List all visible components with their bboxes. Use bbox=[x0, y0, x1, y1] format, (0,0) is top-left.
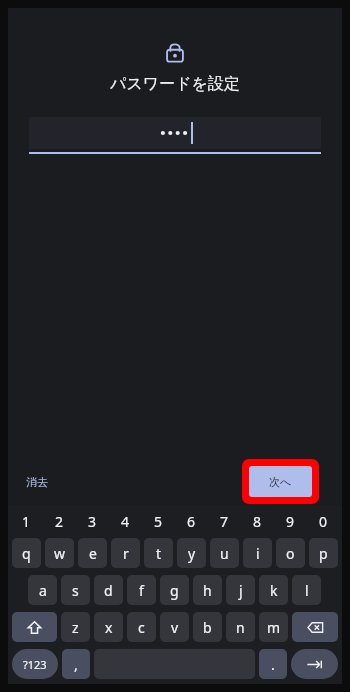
staticText: u bbox=[220, 544, 229, 563]
button[interactable]: k bbox=[259, 575, 288, 605]
staticText: 4 bbox=[121, 512, 130, 531]
staticText: q bbox=[22, 544, 31, 563]
button[interactable]: d bbox=[94, 575, 123, 605]
staticText: o bbox=[286, 544, 295, 563]
staticText: ?123 bbox=[23, 657, 47, 672]
button[interactable]: p bbox=[309, 538, 338, 568]
button[interactable]: 2 bbox=[43, 508, 76, 534]
staticText: 次へ bbox=[269, 475, 292, 489]
button[interactable]: n bbox=[226, 612, 255, 642]
staticText: c bbox=[138, 618, 145, 637]
staticText: v bbox=[171, 618, 179, 637]
staticText: 7 bbox=[220, 512, 229, 531]
button[interactable]: s bbox=[61, 575, 90, 605]
button[interactable]: a bbox=[28, 575, 57, 605]
staticText: f bbox=[139, 581, 144, 600]
staticText: z bbox=[72, 618, 79, 637]
button[interactable]: e bbox=[78, 538, 107, 568]
button[interactable]: 4 bbox=[109, 508, 142, 534]
staticText: y bbox=[188, 544, 196, 563]
button[interactable]: 3 bbox=[76, 508, 109, 534]
button[interactable]: 0 bbox=[307, 508, 340, 534]
button[interactable]: t bbox=[144, 538, 173, 568]
other: Lock bbox=[164, 41, 186, 63]
staticText: p bbox=[319, 544, 328, 563]
staticText: j bbox=[239, 581, 243, 600]
button[interactable]: o bbox=[276, 538, 305, 568]
button[interactable]: Backspace bbox=[292, 612, 338, 642]
button[interactable]: j bbox=[226, 575, 255, 605]
staticText: s bbox=[72, 581, 79, 600]
button[interactable]: c bbox=[127, 612, 156, 642]
button[interactable]: i bbox=[243, 538, 272, 568]
button[interactable]: 8 bbox=[241, 508, 274, 534]
staticText: 3 bbox=[88, 512, 97, 531]
button[interactable]: q bbox=[12, 538, 41, 568]
staticText: l bbox=[305, 581, 309, 600]
button[interactable]: v bbox=[160, 612, 189, 642]
button[interactable]: Enter bbox=[291, 649, 338, 679]
button[interactable]: 5 bbox=[142, 508, 175, 534]
button[interactable]: z bbox=[61, 612, 90, 642]
button[interactable]: y bbox=[177, 538, 206, 568]
button[interactable]: f bbox=[127, 575, 156, 605]
button[interactable]: 消去 bbox=[22, 471, 52, 493]
button[interactable]: x bbox=[94, 612, 123, 642]
button[interactable]: r bbox=[111, 538, 140, 568]
staticText: b bbox=[203, 618, 212, 637]
button[interactable]: g bbox=[160, 575, 189, 605]
button[interactable]: 次へ bbox=[249, 466, 312, 497]
staticText: x bbox=[105, 618, 113, 637]
staticText: 2 bbox=[55, 512, 64, 531]
button[interactable]: 7 bbox=[208, 508, 241, 534]
button[interactable]: b bbox=[193, 612, 222, 642]
button[interactable]: u bbox=[210, 538, 239, 568]
button[interactable]: l bbox=[292, 575, 321, 605]
staticText: d bbox=[104, 581, 113, 600]
button[interactable]: m bbox=[259, 612, 288, 642]
staticText: a bbox=[39, 581, 47, 600]
button[interactable]: , bbox=[62, 649, 90, 679]
staticText: 5 bbox=[154, 512, 163, 531]
staticText: h bbox=[203, 581, 212, 600]
staticText: k bbox=[270, 581, 278, 600]
button[interactable]: h bbox=[193, 575, 222, 605]
staticText: t bbox=[156, 544, 162, 563]
button[interactable]: w bbox=[45, 538, 74, 568]
staticText: , bbox=[74, 655, 78, 674]
staticText: 9 bbox=[286, 512, 295, 531]
staticText: パスワードを設定 bbox=[110, 74, 240, 94]
button[interactable]: Shift bbox=[12, 612, 57, 642]
staticText: w bbox=[54, 544, 66, 563]
staticText: m bbox=[267, 618, 281, 637]
staticText: . bbox=[271, 655, 275, 674]
button[interactable]: . bbox=[259, 649, 287, 679]
staticText: g bbox=[170, 581, 179, 600]
staticText: 消去 bbox=[26, 475, 48, 489]
button[interactable]: 9 bbox=[274, 508, 307, 534]
staticText: i bbox=[256, 544, 260, 563]
staticText: n bbox=[236, 618, 245, 637]
staticText: 0 bbox=[319, 512, 328, 531]
button[interactable]: ?123 bbox=[12, 649, 58, 679]
button[interactable]: 1 bbox=[10, 508, 43, 534]
staticText: 6 bbox=[187, 512, 196, 531]
staticText: 8 bbox=[253, 512, 262, 531]
staticText: r bbox=[123, 544, 129, 563]
staticText: e bbox=[89, 544, 97, 563]
button[interactable]: 6 bbox=[175, 508, 208, 534]
staticText: 1 bbox=[22, 512, 31, 531]
